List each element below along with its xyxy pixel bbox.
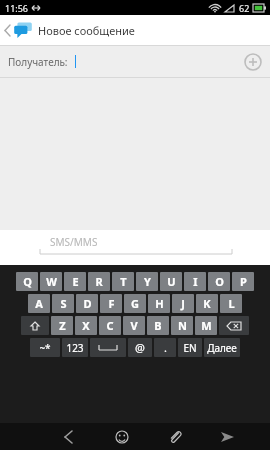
button[interactable]: Add recipient [244,53,262,71]
button[interactable]: Z [51,316,73,335]
staticText: S [60,296,67,311]
button[interactable]: S [52,294,74,313]
other: Back [4,24,11,37]
button[interactable]: Далее [204,338,240,357]
staticText: Z [59,318,66,333]
button[interactable]: @ [128,338,152,357]
button[interactable]: I [184,272,206,291]
staticText: Получатель: [8,55,68,69]
button[interactable]: L [220,294,242,313]
staticText: B [154,318,162,333]
button[interactable]: G [124,294,146,313]
staticText: J [181,296,185,311]
button[interactable]: K [196,294,218,313]
button[interactable]: . [154,338,176,357]
button[interactable]: Y [136,272,158,291]
button[interactable]: T [112,272,134,291]
button[interactable]: Back [42,423,95,450]
staticText: U [167,274,176,289]
button[interactable]: A [28,294,50,313]
button[interactable]: EN [178,338,202,357]
staticText: K [203,296,211,311]
staticText: I [193,274,198,289]
staticText: C [106,318,114,333]
button[interactable]: Attach [148,423,201,450]
button[interactable]: Send [201,423,254,450]
button[interactable]: O [208,272,230,291]
staticText: . [164,340,167,355]
button[interactable]: SMS/MMS [0,230,270,256]
staticText: M [201,318,212,333]
button[interactable]: C [99,316,121,335]
button[interactable]: V [123,316,145,335]
button[interactable]: H [148,294,170,313]
button[interactable]: B [147,316,169,335]
staticText: D [83,296,92,311]
button[interactable]: Backspace [219,316,249,335]
staticText: ~* [39,341,51,355]
staticText: Новое сообщение [38,23,135,38]
staticText: G [131,296,139,311]
staticText: E [72,274,79,289]
button[interactable]: N [171,316,193,335]
button[interactable]: Q [16,272,38,291]
staticText: H [155,296,164,311]
staticText: X [82,318,90,333]
staticText: V [130,318,138,333]
staticText: N [178,318,187,333]
button[interactable]: ~* [30,338,60,357]
button[interactable]: R [88,272,110,291]
staticText: A [35,296,43,311]
staticText: F [108,296,115,311]
button[interactable]: Space [90,338,126,357]
staticText: R [95,274,103,289]
button[interactable]: P [232,272,254,291]
staticText: 11:56 [5,2,29,14]
staticText: Y [144,274,151,289]
button[interactable]: 123 [62,338,88,357]
button[interactable]: Emoji [95,423,148,450]
button[interactable]: X [75,316,97,335]
button[interactable]: E [64,272,86,291]
staticText: L [228,296,235,311]
button[interactable]: W [40,272,62,291]
staticText: T [120,274,127,289]
button[interactable]: M [195,316,217,335]
staticText: P [240,274,247,289]
button[interactable]: J [172,294,194,313]
button[interactable]: F [100,294,122,313]
button[interactable]: Shift [21,316,49,335]
staticText: 62 [239,2,250,14]
staticText: Далее [207,341,237,355]
staticText: @ [135,340,145,355]
staticText: O [215,274,224,289]
staticText: W [46,274,57,289]
staticText: 123 [66,341,84,355]
button[interactable]: D [76,294,98,313]
staticText: Q [23,274,32,289]
button[interactable]: U [160,272,182,291]
staticText: SMS/MMS [50,235,98,249]
button[interactable]: Back [0,15,270,45]
staticText: EN [183,341,197,355]
